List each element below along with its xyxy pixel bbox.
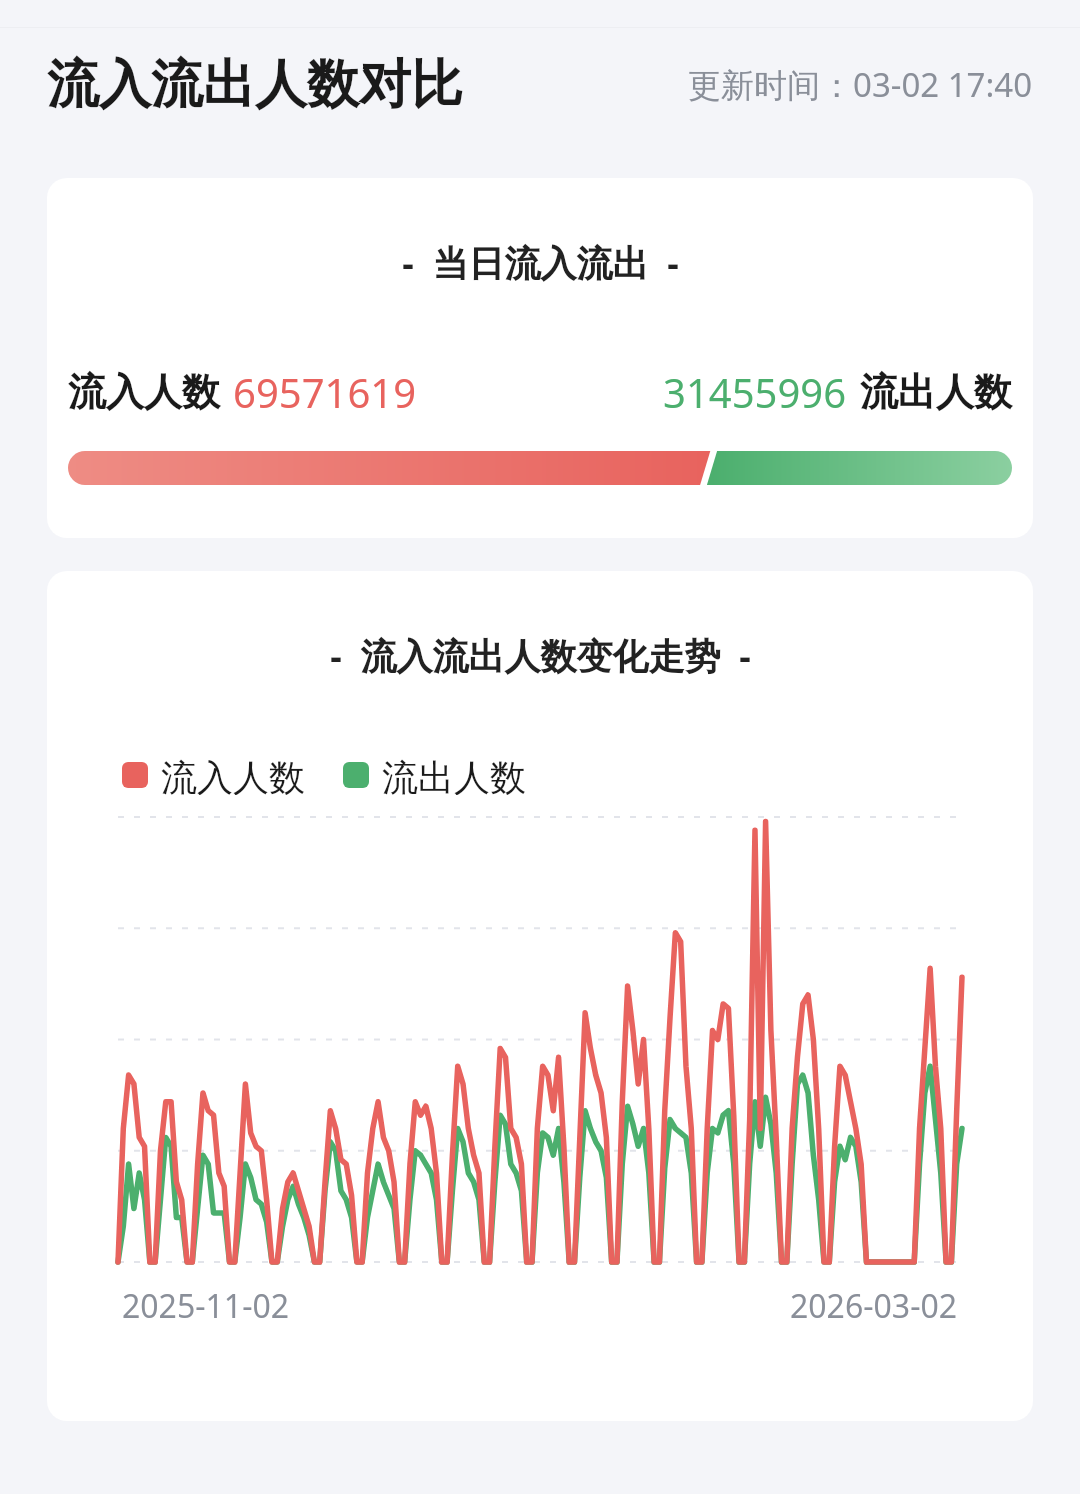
- button[interactable]: 流出人数: [343, 755, 526, 795]
- button[interactable]: - 流入流出人数变化走势 -: [47, 571, 1033, 1421]
- staticText: 更新时间：03-02 17:40: [688, 62, 1033, 107]
- staticText: 69571619: [233, 365, 417, 419]
- staticText: 2026-03-02: [790, 1284, 958, 1328]
- staticText: 流入流出人数对比: [47, 52, 463, 118]
- staticText: 流入人数: [161, 755, 305, 795]
- other: 流入流出人数变化走势折线图: [118, 817, 962, 1262]
- staticText: - 当日流入流出 -: [402, 238, 679, 287]
- staticText: 流出人数: [382, 755, 526, 795]
- button[interactable]: 流入人数: [122, 755, 305, 795]
- staticText: 流出人数: [860, 368, 1012, 416]
- button[interactable]: - 当日流入流出 -: [47, 178, 1033, 538]
- staticText: - 流入流出人数变化走势 -: [330, 631, 751, 680]
- staticText: 流入人数: [68, 368, 220, 416]
- staticText: 31455996: [663, 365, 847, 419]
- staticText: 2025-11-02: [122, 1284, 290, 1328]
